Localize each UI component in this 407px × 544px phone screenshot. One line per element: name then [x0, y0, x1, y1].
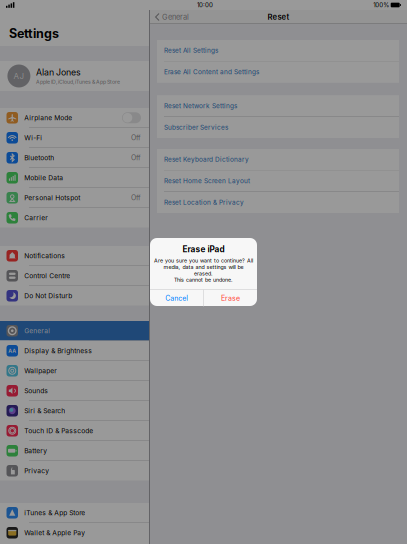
- button[interactable]: Carrier: [0, 208, 149, 227]
- button[interactable]: Wi-Fi: [0, 128, 149, 147]
- staticText: Reset Network Settings: [164, 102, 237, 110]
- staticText: Off: [131, 194, 141, 202]
- staticText: Subscriber Services: [164, 124, 228, 131]
- staticText: Wallet & Apple Pay: [24, 529, 85, 537]
- button[interactable]: Battery: [0, 441, 149, 460]
- button[interactable]: Subscriber Services: [157, 117, 399, 138]
- staticText: AJ: [13, 71, 24, 81]
- staticText: Privacy: [24, 467, 49, 475]
- button[interactable]: Airplane Mode: [0, 108, 149, 127]
- staticText: Personal Hotspot: [24, 194, 80, 202]
- button[interactable]: AA: [0, 341, 149, 360]
- staticText: Touch ID & Passcode: [24, 427, 93, 435]
- button[interactable]: Touch ID & Passcode: [0, 421, 149, 440]
- button[interactable]: Bluetooth: [0, 148, 149, 167]
- staticText: Sounds: [24, 387, 48, 395]
- staticText: Display & Brightness: [24, 347, 92, 355]
- button[interactable]: Personal Hotspot: [0, 188, 149, 207]
- staticText: Reset Keyboard Dictionary: [164, 156, 249, 163]
- staticText: Reset: [267, 12, 289, 22]
- button[interactable]: Wallpaper: [0, 361, 149, 380]
- button[interactable]: Reset Location & Privacy: [157, 192, 399, 213]
- staticText: This cannot be undone.: [174, 277, 233, 283]
- staticText: Reset Location & Privacy: [164, 199, 244, 206]
- button[interactable]: Cancel: [150, 290, 203, 307]
- staticText: Notifications: [24, 252, 65, 260]
- staticText: 10:00: [197, 1, 213, 9]
- button[interactable]: Control Centre: [0, 266, 149, 285]
- staticText: Erase: [221, 294, 240, 302]
- button[interactable]: General: [150, 8, 189, 25]
- button[interactable]: Sounds: [0, 381, 149, 400]
- button[interactable]: iTunes & App Store: [0, 503, 149, 522]
- staticText: Wallpaper: [24, 367, 57, 375]
- button[interactable]: Mobile Data: [0, 168, 149, 187]
- staticText: Reset Home Screen Layout: [164, 177, 250, 185]
- button[interactable]: Erase: [204, 290, 257, 307]
- button[interactable]: AJ: [0, 61, 149, 91]
- button[interactable]: Erase All Content and Settings: [157, 61, 399, 82]
- staticText: General: [24, 327, 50, 335]
- staticText: Off: [131, 134, 141, 142]
- button[interactable]: Siri & Search: [0, 401, 149, 420]
- staticText: Bluetooth: [24, 154, 54, 162]
- staticText: Erase iPad: [182, 244, 224, 254]
- button[interactable]: Notifications: [0, 246, 149, 265]
- button[interactable]: Reset All Settings: [157, 40, 399, 61]
- staticText: Wi-Fi: [24, 134, 42, 142]
- staticText: Settings: [9, 26, 59, 41]
- staticText: Off: [131, 154, 141, 162]
- staticText: Are you sure you want to continue? All: [154, 257, 253, 264]
- staticText: 100%: [373, 1, 389, 9]
- staticText: Cancel: [165, 294, 188, 302]
- staticText: Battery: [24, 447, 47, 455]
- button[interactable]: Reset Home Screen Layout: [157, 170, 399, 191]
- button[interactable]: Wallet & Apple Pay: [0, 523, 149, 542]
- staticText: erased.: [194, 270, 213, 277]
- staticText: Mobile Data: [24, 174, 63, 182]
- staticText: Siri & Search: [24, 407, 65, 415]
- staticText: Airplane Mode: [24, 114, 72, 122]
- button[interactable]: Privacy: [0, 461, 149, 480]
- staticText: Carrier: [24, 214, 48, 222]
- staticText: Control Centre: [24, 272, 70, 280]
- staticText: Alan Jones: [36, 67, 81, 78]
- button[interactable]: Reset Network Settings: [157, 95, 399, 116]
- staticText: AA: [8, 348, 16, 354]
- staticText: Erase All Content and Settings: [164, 68, 259, 76]
- staticText: Apple ID, iCloud, iTunes & App Store: [36, 79, 120, 85]
- button[interactable]: General: [0, 321, 149, 340]
- staticText: iTunes & App Store: [24, 509, 85, 517]
- button[interactable]: Do Not Disturb: [0, 286, 149, 305]
- staticText: media, data and settings will be: [163, 264, 243, 270]
- staticText: Reset All Settings: [164, 47, 218, 54]
- staticText: Do Not Disturb: [24, 292, 72, 300]
- staticText: General: [162, 12, 189, 21]
- button[interactable]: Reset Keyboard Dictionary: [157, 149, 399, 170]
